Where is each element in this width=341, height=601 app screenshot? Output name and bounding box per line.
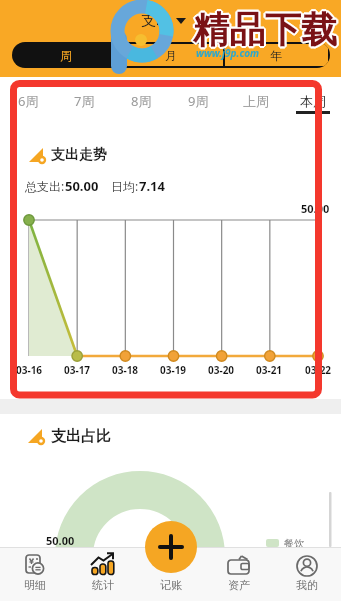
staticText: 我的: [296, 578, 318, 592]
button[interactable]: 统计: [69, 547, 137, 601]
staticText: 年: [270, 48, 282, 63]
staticText: 8周: [131, 92, 152, 110]
staticText: 精品下载: [194, 6, 338, 51]
staticText: 03-16: [16, 363, 43, 377]
button[interactable]: 我的: [273, 547, 341, 601]
staticText: 周: [60, 48, 72, 63]
button[interactable]: 年: [223, 44, 328, 66]
staticText: 明细: [24, 578, 46, 592]
staticText: 精品下载: [193, 9, 337, 54]
staticText: 记账: [160, 578, 182, 592]
staticText: 精品下载: [194, 8, 338, 53]
button[interactable]: 支出: [135, 5, 192, 36]
staticText: 精品下载: [192, 8, 336, 53]
staticText: 7.14: [139, 177, 165, 195]
staticText: 03-18: [112, 363, 139, 377]
staticText: 上周: [243, 93, 269, 109]
staticText: 统计: [92, 578, 114, 592]
button[interactable]: 9周: [170, 77, 227, 115]
button[interactable]: 记账: [137, 547, 205, 601]
staticText: 支出走势: [51, 146, 107, 164]
button[interactable]: [145, 521, 197, 573]
staticText: 03-22: [305, 363, 332, 377]
staticText: 月: [165, 48, 177, 63]
button[interactable]: 8周: [113, 77, 170, 115]
staticText: 03-20: [208, 363, 235, 377]
staticText: 03-17: [64, 363, 91, 377]
staticText: 精品下载: [191, 7, 335, 52]
staticText: www.j9p.com: [196, 46, 260, 60]
button[interactable]: 6周: [0, 77, 56, 115]
button[interactable]: 月: [118, 44, 223, 66]
staticText: 6周: [18, 92, 39, 110]
staticText: 03-21: [256, 363, 283, 377]
button[interactable]: 资产: [205, 547, 273, 601]
staticText: 精品下载: [193, 5, 337, 50]
staticText: 7周: [74, 92, 95, 110]
button[interactable]: 上周: [227, 77, 284, 115]
staticText: 本周: [300, 93, 326, 109]
button[interactable]: 周: [14, 44, 118, 66]
button[interactable]: 本周: [284, 77, 341, 115]
staticText: 50.00: [46, 533, 75, 548]
staticText: 餐饮: [284, 537, 304, 550]
staticText: 精品下载: [192, 6, 336, 51]
staticText: 50.00: [301, 201, 330, 216]
button[interactable]: 7周: [56, 77, 113, 115]
staticText: 9周: [188, 92, 209, 110]
staticText: 精品下载: [193, 7, 337, 52]
staticText: 支出占比: [51, 427, 111, 446]
staticText: 日均:: [111, 178, 139, 194]
staticText: 精品下载: [195, 7, 339, 52]
staticText: 03-19: [160, 363, 187, 377]
staticText: 资产: [228, 578, 250, 592]
staticText: 总支出:: [25, 178, 65, 194]
button[interactable]: 明细: [0, 547, 69, 601]
staticText: 50.00: [65, 177, 99, 195]
staticText: 支出: [141, 11, 171, 30]
